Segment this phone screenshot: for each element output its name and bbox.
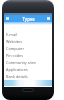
button[interactable]: Bank details [4,73,52,80]
button[interactable]: Pin codes [4,52,52,59]
staticText: Applications [6,67,28,72]
button[interactable]: E-mail [4,31,52,38]
staticText: Computer [6,46,25,51]
button[interactable]: Search [46,16,51,21]
button[interactable] [4,80,52,86]
staticText: Websites [6,39,23,44]
button[interactable]: Applications [4,66,52,73]
button[interactable]: Computer [4,45,52,52]
staticText: E-mail [6,32,17,37]
staticText: Pin codes [6,53,24,58]
button[interactable]: Websites [4,38,52,45]
button[interactable]: Menu [5,16,10,21]
staticText: Types [22,16,35,22]
staticText: Bank details [6,74,28,79]
button[interactable]: Community sites [4,59,52,66]
staticText: Community sites [6,60,36,65]
button[interactable]: Home [22,88,34,92]
